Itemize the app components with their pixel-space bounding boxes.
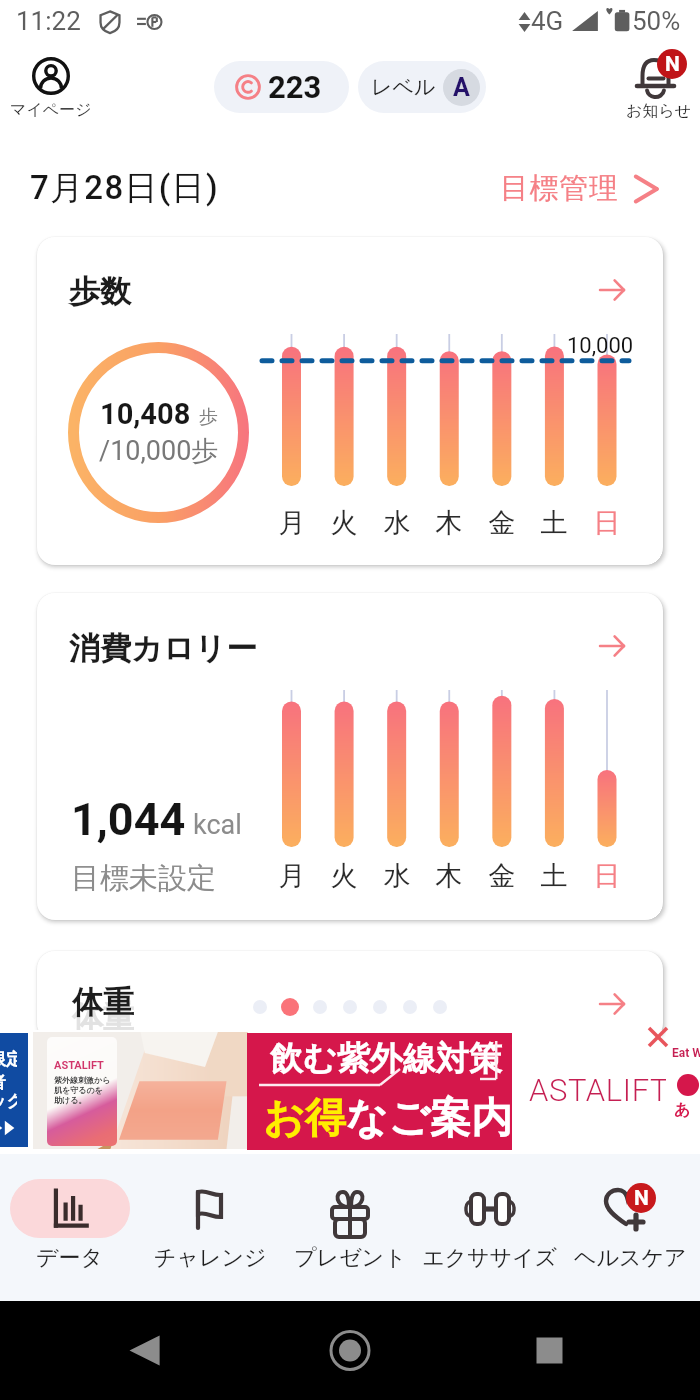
staticText: 木 [429, 506, 469, 540]
staticText: 木 [429, 859, 469, 893]
button[interactable]: 消費カロリーの詳細 [593, 629, 631, 663]
staticText: 目標管理 [500, 170, 619, 207]
staticText: 50% [632, 6, 681, 36]
button[interactable]: 広告を閉じる [643, 1022, 673, 1052]
staticText: エクササイズ [422, 1244, 558, 1272]
button[interactable]: 体重 [37, 951, 663, 1041]
staticText: 月 [272, 859, 312, 893]
staticText: 体重 [72, 983, 134, 1022]
staticText: 者 [0, 1072, 6, 1093]
button[interactable]: データ [0, 1154, 140, 1301]
staticText: 4G [531, 6, 564, 36]
button[interactable]: レベル [358, 61, 486, 113]
staticText: A [453, 73, 470, 102]
staticText: 7月28日(日) [30, 167, 219, 209]
staticText: マイページ [10, 100, 92, 120]
staticText: N [665, 52, 680, 77]
staticText: レベル [371, 74, 436, 100]
staticText: ASTALIFT [54, 1059, 104, 1072]
button[interactable]: 次の広告 [666, 1030, 700, 1150]
staticText: 消費カロリー [69, 629, 258, 668]
staticText: あ [674, 1100, 691, 1120]
staticText: ASTALIFT [529, 1072, 670, 1108]
staticText: Eat W [672, 1046, 700, 1060]
staticText: 水 [377, 506, 417, 540]
button[interactable]: プレゼント [280, 1154, 420, 1301]
button[interactable]: 223 [214, 61, 349, 113]
staticText: 日 [587, 506, 627, 540]
staticText: プレゼント [294, 1244, 407, 1272]
staticText: チャレンジ [154, 1244, 267, 1272]
staticText: 10,000 [567, 333, 634, 359]
staticText: ヘルスケア [574, 1244, 687, 1272]
staticText: 月 [272, 506, 312, 540]
staticText: 肌を守るのを [54, 1085, 103, 1095]
button[interactable]: 歩数の詳細 [593, 273, 631, 307]
staticText: データ [36, 1244, 104, 1272]
staticText: 1,044 [71, 793, 186, 846]
staticText: 歩数 [69, 272, 131, 311]
staticText: 飲む紫外線対策 [270, 1038, 502, 1080]
staticText: お知らせ [626, 101, 692, 121]
staticText: なご案内 [346, 1093, 512, 1145]
staticText: 日 [587, 859, 627, 893]
staticText: kcal [193, 809, 242, 841]
button[interactable]: マイページ [0, 54, 101, 120]
staticText: ック [0, 1091, 17, 1112]
button[interactable]: 目標管理 [496, 166, 665, 211]
staticText: 火 [324, 859, 364, 893]
staticText: 223 [268, 69, 322, 105]
staticText: 限定 [0, 1049, 17, 1070]
staticText: 目標未設定 [71, 860, 216, 897]
staticText: 紫外線刺激から [54, 1075, 111, 1085]
staticText: /10,000歩 [99, 434, 219, 468]
button[interactable]: お知らせ [610, 40, 700, 130]
button[interactable]: N [560, 1154, 700, 1301]
staticText: 金 [482, 506, 522, 540]
staticText: お得 [263, 1093, 346, 1145]
staticText: 水 [377, 859, 417, 893]
button[interactable]: エクササイズ [420, 1154, 560, 1301]
staticText: 歩 [199, 405, 218, 429]
button[interactable]: 前の広告 [0, 1033, 28, 1147]
button[interactable]: 歩数 [37, 237, 663, 565]
staticText: 体重 [72, 998, 134, 1037]
staticText: 土 [534, 859, 574, 893]
staticText: 10,408 [100, 397, 191, 431]
staticText: 11:22 [16, 6, 81, 36]
staticText: 火 [324, 506, 364, 540]
button[interactable]: チャレンジ [140, 1154, 280, 1301]
staticText: 助ける。 [54, 1095, 87, 1105]
staticText: N [634, 1186, 649, 1211]
staticText: 金 [482, 859, 522, 893]
staticText: 土 [534, 506, 574, 540]
button[interactable]: ASTALIFT の広告 [32, 1030, 662, 1150]
button[interactable]: 消費カロリー [37, 593, 663, 920]
